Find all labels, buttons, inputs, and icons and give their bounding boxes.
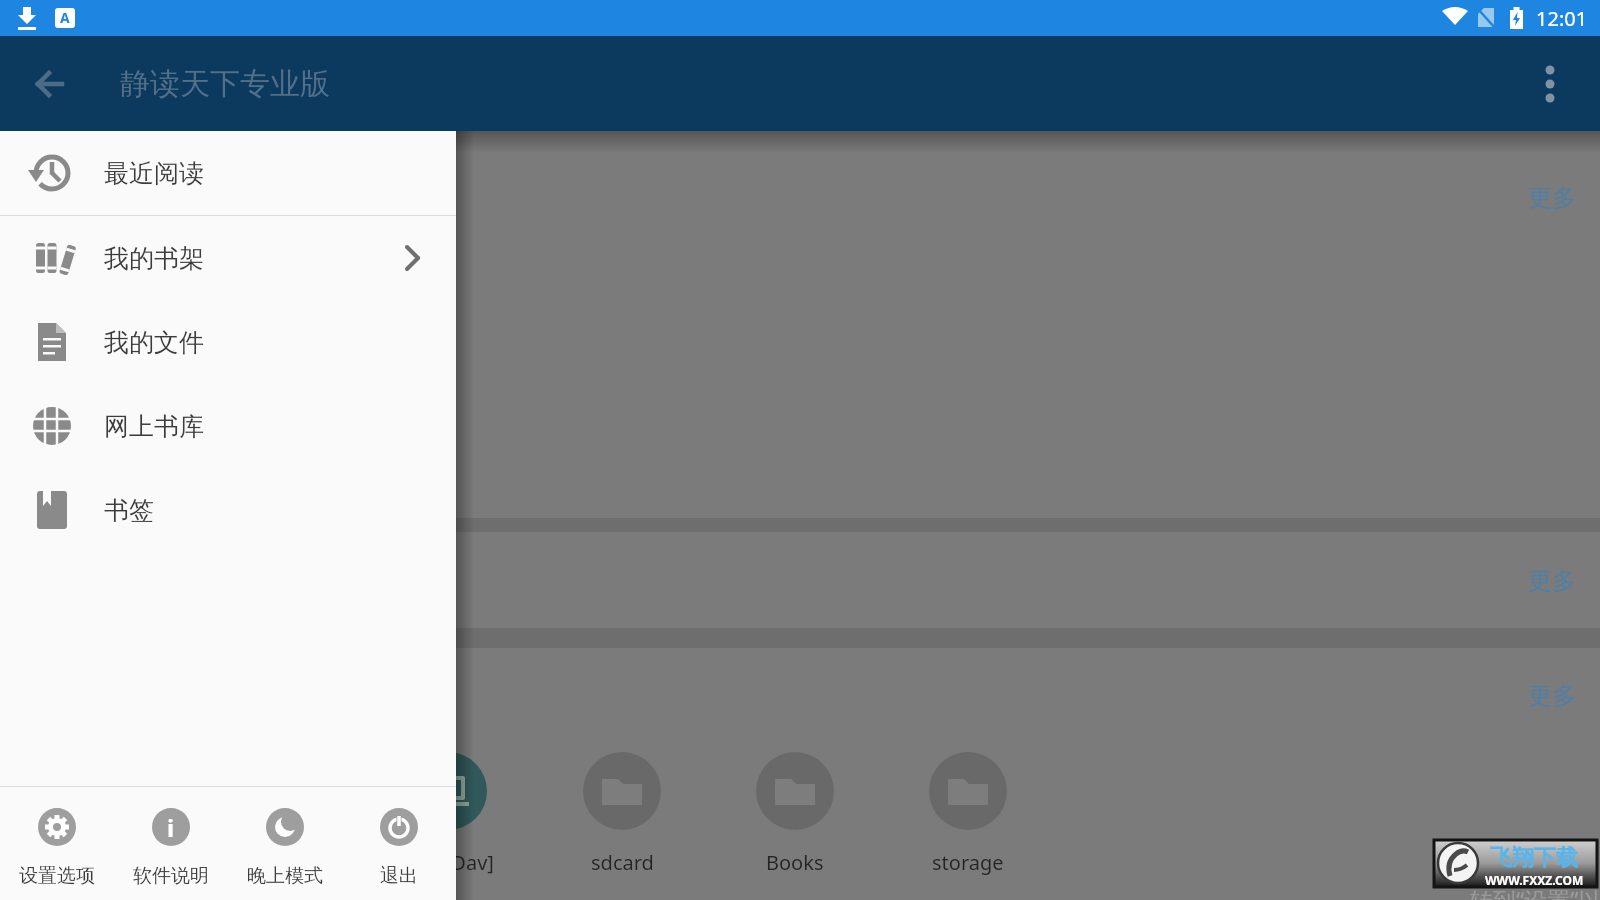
- staticText: storage: [932, 849, 1004, 876]
- button[interactable]: 我的文件: [0, 300, 456, 384]
- button[interactable]: 更多: [1528, 566, 1576, 596]
- staticText: A: [60, 8, 70, 27]
- staticText: V: [1578, 858, 1592, 889]
- staticText: 飞翔下载: [1490, 844, 1578, 872]
- staticText: 书签: [104, 495, 154, 526]
- staticText: 12:01: [1536, 5, 1588, 32]
- staticText: 软件说明: [133, 864, 209, 888]
- button[interactable]: storage: [908, 750, 1028, 880]
- button[interactable]: 晚上模式: [228, 787, 342, 900]
- button[interactable]: sdcard: [562, 750, 682, 880]
- staticText: WWW.FXXZ.COM: [1485, 872, 1584, 888]
- staticText: [WebDav]: [403, 849, 494, 876]
- button[interactable]: 更多: [1528, 183, 1576, 213]
- staticText: 网上书库: [104, 411, 204, 442]
- staticText: Books: [766, 849, 824, 876]
- button[interactable]: 设置选项: [0, 787, 114, 900]
- button[interactable]: [WebDav]: [388, 750, 508, 880]
- button[interactable]: 最近阅读: [0, 131, 456, 215]
- staticText: 我的书架: [104, 243, 204, 274]
- button[interactable]: Books: [735, 750, 855, 880]
- staticText: 转到“设置”以激活: [1470, 884, 1600, 900]
- staticText: 设置选项: [19, 864, 95, 888]
- staticText: i: [167, 811, 175, 844]
- staticText: 退出: [380, 864, 418, 888]
- staticText: sdcard: [591, 849, 654, 876]
- button[interactable]: 网上书库: [0, 384, 456, 468]
- staticText: 晚上模式: [247, 864, 323, 888]
- button[interactable]: [1530, 64, 1570, 104]
- button[interactable]: 更多: [1528, 681, 1576, 711]
- button[interactable]: [22, 56, 78, 112]
- button[interactable]: 退出: [342, 787, 456, 900]
- button[interactable]: 书签: [0, 468, 456, 552]
- button[interactable]: i: [114, 787, 228, 900]
- staticText: 静读天下专业版: [120, 65, 330, 103]
- staticText: 最近阅读: [104, 158, 204, 189]
- button[interactable]: 我的书架: [0, 216, 456, 300]
- staticText: 我的文件: [104, 327, 204, 358]
